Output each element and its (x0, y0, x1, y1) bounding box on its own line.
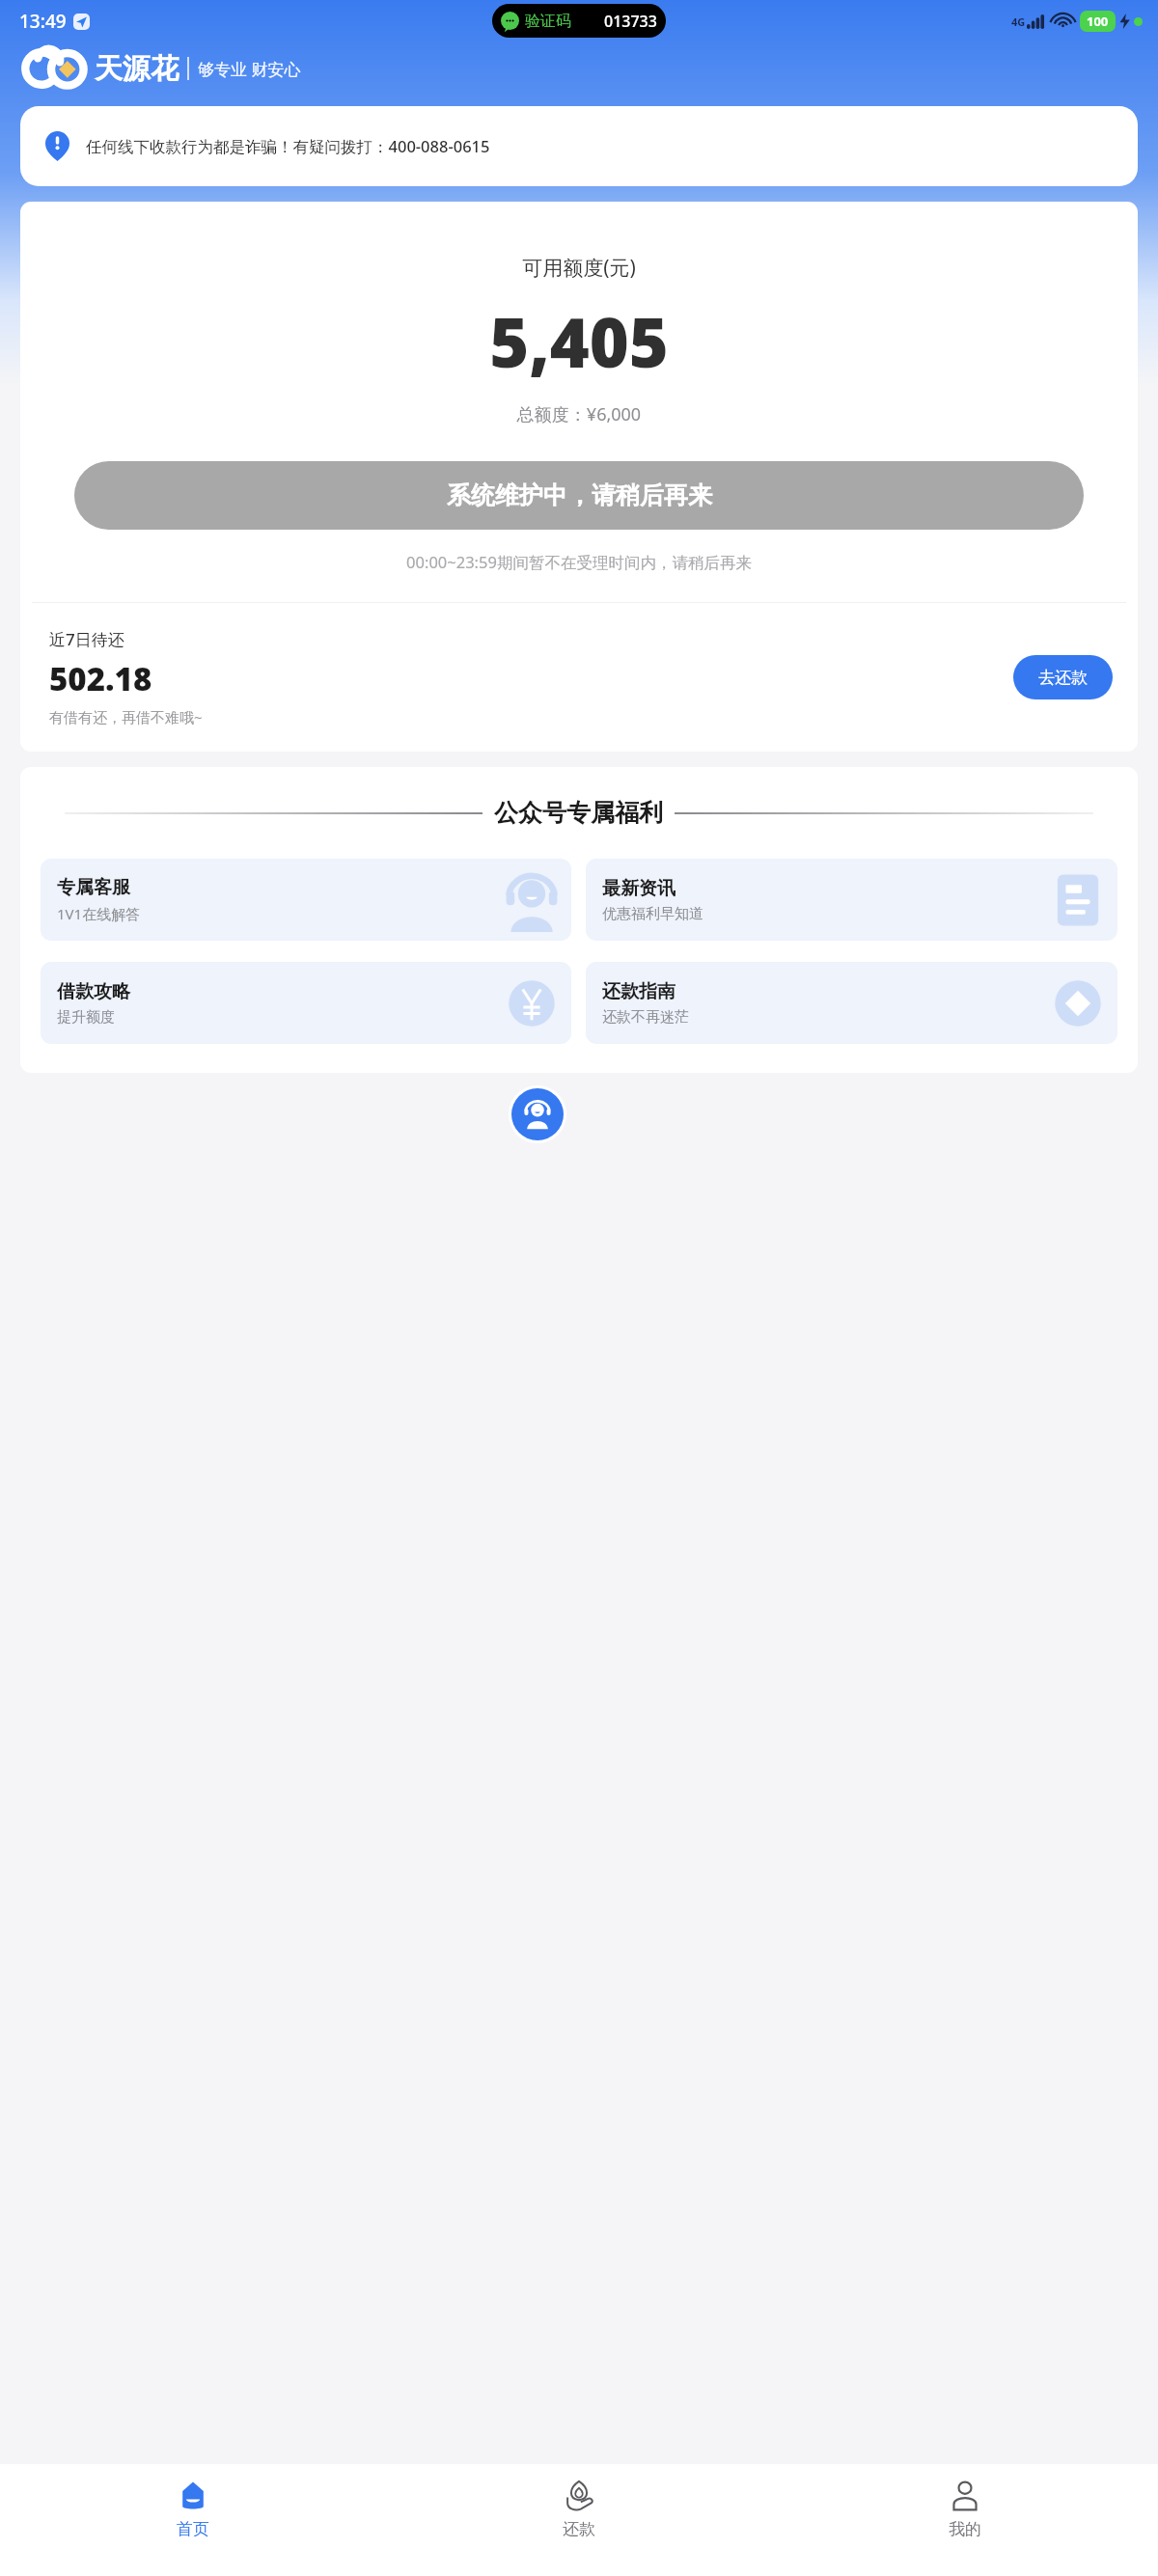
staticText: 4G (1011, 14, 1026, 29)
button[interactable]: 任何线下收款行为都是诈骗！有疑问拨打：400-088-0615 (20, 106, 1138, 186)
button[interactable]: 在线客服 (511, 1088, 564, 1140)
staticText: 优惠福利早知道 (602, 905, 703, 923)
staticText: 100 (1087, 13, 1109, 30)
button[interactable]: 我的 (772, 2464, 1158, 2576)
staticText: 可用额度(元) (20, 254, 1138, 282)
staticText: 首页 (177, 2519, 209, 2539)
staticText: 提升额度 (57, 1008, 115, 1027)
staticText: 13:49 (19, 9, 67, 34)
button[interactable]: 借款攻略 (41, 962, 571, 1044)
button[interactable]: 专属客服 (41, 859, 571, 941)
staticText: 去还款 (1038, 668, 1088, 688)
staticText: 1V1在线解答 (57, 904, 141, 923)
staticText: 验证码 (525, 12, 571, 31)
staticText: 够专业 财安心 (198, 58, 301, 80)
button[interactable]: 最新资讯 (586, 859, 1117, 941)
button[interactable]: 系统维护中，请稍后再来 (74, 461, 1084, 530)
staticText: 任何线下收款行为都是诈骗！有疑问拨打：400-088-0615 (86, 135, 490, 157)
staticText: 还款不再迷茫 (602, 1008, 689, 1027)
staticText: 公众号专属福利 (494, 798, 663, 828)
button[interactable]: 去还款 (1013, 655, 1113, 699)
staticText: 5,405 (20, 295, 1138, 387)
staticText: 我的 (949, 2519, 981, 2539)
staticText: 借款攻略 (57, 980, 130, 1003)
staticText: 00:00~23:59期间暂不在受理时间内，请稍后再来 (20, 551, 1138, 573)
staticText: 系统维护中，请稍后再来 (447, 480, 712, 510)
staticText: 还款 (563, 2519, 595, 2539)
button[interactable]: 还款 (386, 2464, 772, 2576)
staticText: 总额度：¥6,000 (20, 402, 1138, 426)
staticText: 专属客服 (57, 876, 130, 899)
staticText: 近7日待还 (49, 628, 124, 650)
staticText: 502.18 (49, 657, 152, 700)
button[interactable]: 还款指南 (586, 962, 1117, 1044)
staticText: 最新资讯 (602, 877, 675, 900)
staticText: 还款指南 (602, 980, 675, 1003)
staticText: 有借有还，再借不难哦~ (49, 707, 203, 726)
staticText: 013733 (604, 11, 657, 32)
button[interactable]: 首页 (0, 2464, 386, 2576)
staticText: 天源花 (95, 51, 179, 87)
